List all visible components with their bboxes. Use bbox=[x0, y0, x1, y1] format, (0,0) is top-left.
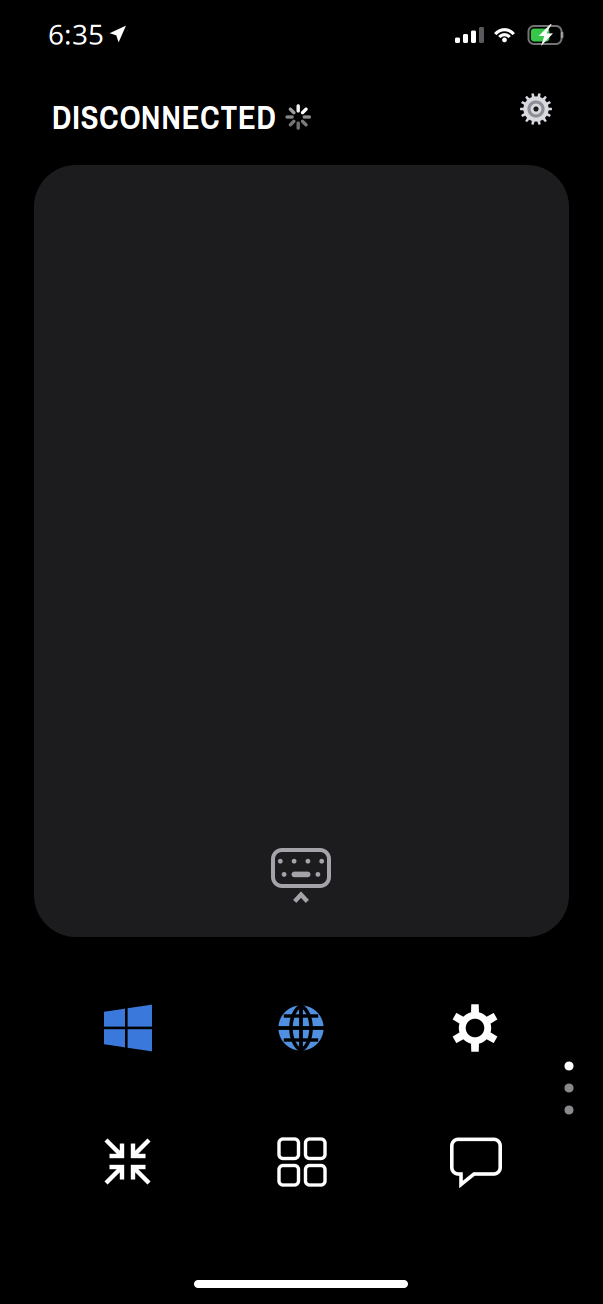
button[interactable]: Collapse window bbox=[63, 1117, 193, 1207]
button[interactable]: Show keyboard bbox=[256, 837, 346, 917]
button[interactable]: Settings bbox=[410, 983, 540, 1073]
button[interactable]: Page 1 of 3 bbox=[549, 1048, 589, 1128]
button[interactable]: Trackpad bbox=[34, 165, 569, 937]
staticText: DISCONNECTED bbox=[52, 95, 276, 139]
button[interactable]: Settings bbox=[508, 81, 564, 137]
staticText: 6:35 bbox=[48, 15, 104, 53]
button[interactable]: Chat bbox=[411, 1117, 541, 1207]
button[interactable]: Start menu bbox=[63, 983, 193, 1073]
button[interactable]: All apps bbox=[237, 1117, 367, 1207]
button[interactable]: Browser bbox=[236, 983, 366, 1073]
